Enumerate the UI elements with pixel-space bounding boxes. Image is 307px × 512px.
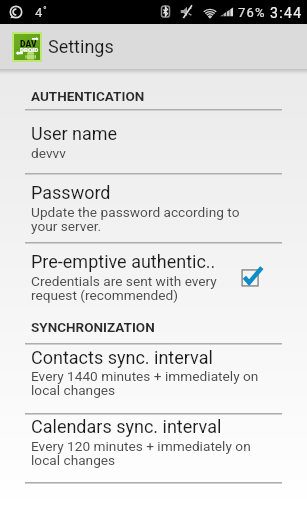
button[interactable]: Contacts sync. interval xyxy=(0,343,307,413)
button[interactable]: DAVdroid xyxy=(12,32,42,62)
staticText: DAV xyxy=(20,39,37,49)
staticText: DROID xyxy=(20,46,39,53)
button[interactable]: Toggle pre-emptive authentication xyxy=(240,265,266,291)
staticText: devvv xyxy=(31,145,66,161)
button[interactable]: Calendars sync. interval xyxy=(0,413,307,482)
staticText: 3:44 xyxy=(270,5,303,21)
staticText: Calendars sync. interval xyxy=(31,416,222,437)
staticText: 4 xyxy=(35,5,43,20)
button[interactable]: Password xyxy=(0,173,307,242)
staticText: Contacts sync. interval xyxy=(31,347,213,368)
button[interactable]: User name xyxy=(0,109,307,173)
staticText: ° xyxy=(43,5,47,17)
staticText: User name xyxy=(31,123,118,144)
staticText: Every 1440 minutes + immediately on loca… xyxy=(31,368,259,398)
staticText: SYNCHRONIZATION xyxy=(31,319,155,335)
staticText: Settings xyxy=(48,36,114,57)
staticText: Update the password according to your se… xyxy=(31,204,240,234)
button[interactable]: Pre-emptive authentic.. xyxy=(0,242,307,318)
staticText: Pre-emptive authentic.. xyxy=(31,251,216,272)
staticText: AUTHENTICATION xyxy=(31,88,145,104)
staticText: 76% xyxy=(238,5,266,20)
staticText: Credentials are sent with every request … xyxy=(31,273,217,303)
staticText: Every 120 minutes + immediately on local… xyxy=(31,438,251,468)
staticText: Password xyxy=(31,182,111,203)
